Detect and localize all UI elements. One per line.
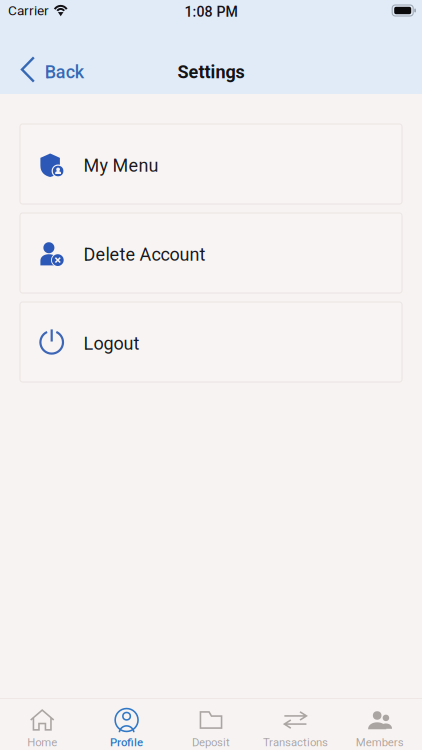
staticText: Deposit xyxy=(192,736,230,749)
button[interactable]: My Menu xyxy=(20,124,402,204)
button[interactable]: Home xyxy=(0,699,84,750)
button[interactable]: Members xyxy=(338,699,422,750)
staticText: Back xyxy=(45,61,84,83)
staticText: Settings xyxy=(177,61,244,83)
staticText: Transactions xyxy=(263,736,328,749)
button[interactable]: Logout xyxy=(20,302,402,382)
staticText: Profile xyxy=(110,736,143,749)
staticText: Logout xyxy=(83,333,139,354)
staticText: Members xyxy=(356,736,404,749)
staticText: Delete Account xyxy=(83,244,205,265)
button[interactable]: Back xyxy=(0,50,98,94)
staticText: Home xyxy=(27,736,57,749)
staticText: Carrier xyxy=(8,2,49,18)
button[interactable]: Deposit xyxy=(169,699,253,750)
button[interactable]: Transactions xyxy=(253,699,338,750)
button[interactable]: Delete Account xyxy=(20,213,402,293)
button[interactable]: Profile xyxy=(84,699,169,750)
staticText: 1:08 PM xyxy=(184,4,237,20)
staticText: My Menu xyxy=(83,155,158,176)
